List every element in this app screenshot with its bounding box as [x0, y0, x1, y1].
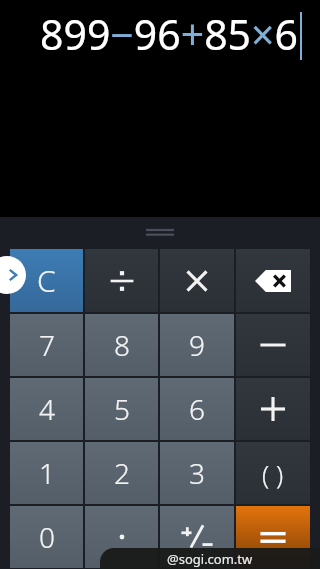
button[interactable]: 0 [10, 506, 83, 568]
button[interactable]: 7 [10, 314, 83, 376]
button[interactable]: ( ) [236, 442, 310, 504]
button[interactable]: 6 [160, 378, 234, 440]
staticText: 8 [114, 326, 130, 364]
staticText: 7 [39, 326, 55, 364]
staticText: 2 [114, 454, 130, 492]
staticText: C [37, 260, 56, 301]
button[interactable]: Decimal point [85, 506, 158, 568]
staticText: 6 [189, 390, 205, 428]
staticText: 3 [189, 454, 205, 492]
button[interactable]: Equals [236, 506, 310, 568]
button[interactable]: Minus [236, 314, 310, 376]
button[interactable]: Plus [236, 378, 310, 440]
staticText: 9 [189, 326, 205, 364]
button[interactable]: 5 [85, 378, 158, 440]
button[interactable]: Toggle sign [160, 506, 234, 568]
button[interactable]: 3 [160, 442, 234, 504]
staticText: 899−96+85×6 [40, 6, 298, 62]
staticText: ( ) [262, 456, 284, 491]
staticText: 1 [39, 454, 55, 492]
staticText: 0 [39, 518, 55, 556]
button[interactable]: Backspace [236, 249, 310, 312]
button[interactable]: 4 [10, 378, 83, 440]
button[interactable]: Open history panel [0, 256, 26, 294]
staticText: 5 [114, 390, 130, 428]
button[interactable]: C [10, 249, 83, 312]
button[interactable]: 8 [85, 314, 158, 376]
button[interactable]: 1 [10, 442, 83, 504]
staticText: 4 [39, 390, 55, 428]
button[interactable]: Multiply [160, 249, 234, 312]
button[interactable]: Divide [85, 249, 158, 312]
button[interactable]: 2 [85, 442, 158, 504]
button[interactable]: 9 [160, 314, 234, 376]
staticText: @sogi.com.tw [167, 550, 253, 568]
